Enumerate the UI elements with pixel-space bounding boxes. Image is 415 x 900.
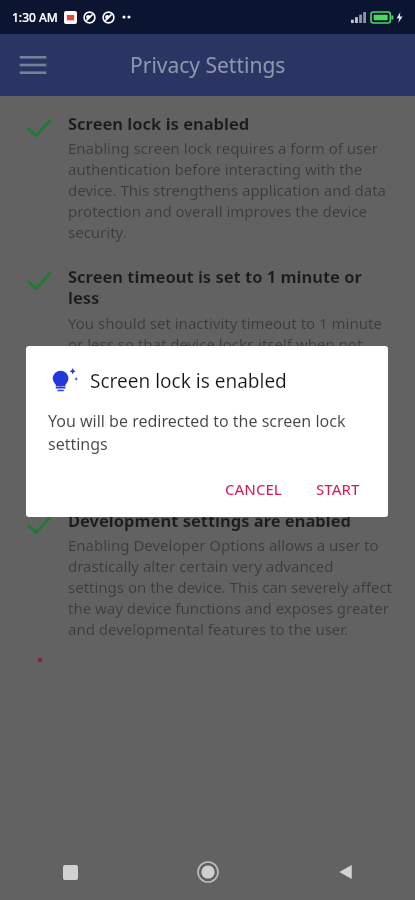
staticText: Privacy Settings [130, 51, 286, 80]
staticText: Screen timeout is set to 1 minute or les… [68, 265, 393, 309]
staticText: 1:30 AM [12, 9, 58, 25]
staticText: Keeping device unlock pattern visible du… [68, 424, 393, 487]
button[interactable]: Home [184, 848, 232, 896]
staticText: You will be redirected to the screen loc… [48, 410, 370, 455]
button[interactable]: Screen timeout is set to 1 minute or les… [0, 243, 415, 376]
staticText: Screen lock is enabled [90, 368, 287, 394]
button[interactable]: Recent apps [46, 848, 94, 896]
staticText: START [316, 479, 360, 499]
staticText: Enabling Developer Options allows a user… [68, 535, 393, 640]
staticText: Development settings are enabled [68, 509, 351, 531]
button[interactable]: START [306, 471, 370, 507]
button[interactable]: Back [322, 848, 370, 896]
staticText: Screen lock is enabled [68, 112, 250, 134]
button[interactable]: Development settings are enabled [0, 487, 415, 640]
staticText: You should set inactivity timeout to 1 m… [68, 313, 393, 376]
button[interactable]: CANCEL [215, 471, 292, 507]
button[interactable]: Screen lock is enabled [0, 96, 415, 243]
staticText: Passwords are visible while typing [68, 398, 350, 420]
staticText: CANCEL [225, 479, 282, 499]
staticText: Enabling screen lock requires a form of … [68, 138, 393, 243]
button[interactable]: Open navigation menu [10, 42, 56, 88]
button[interactable]: Passwords are visible while typing [0, 376, 415, 487]
